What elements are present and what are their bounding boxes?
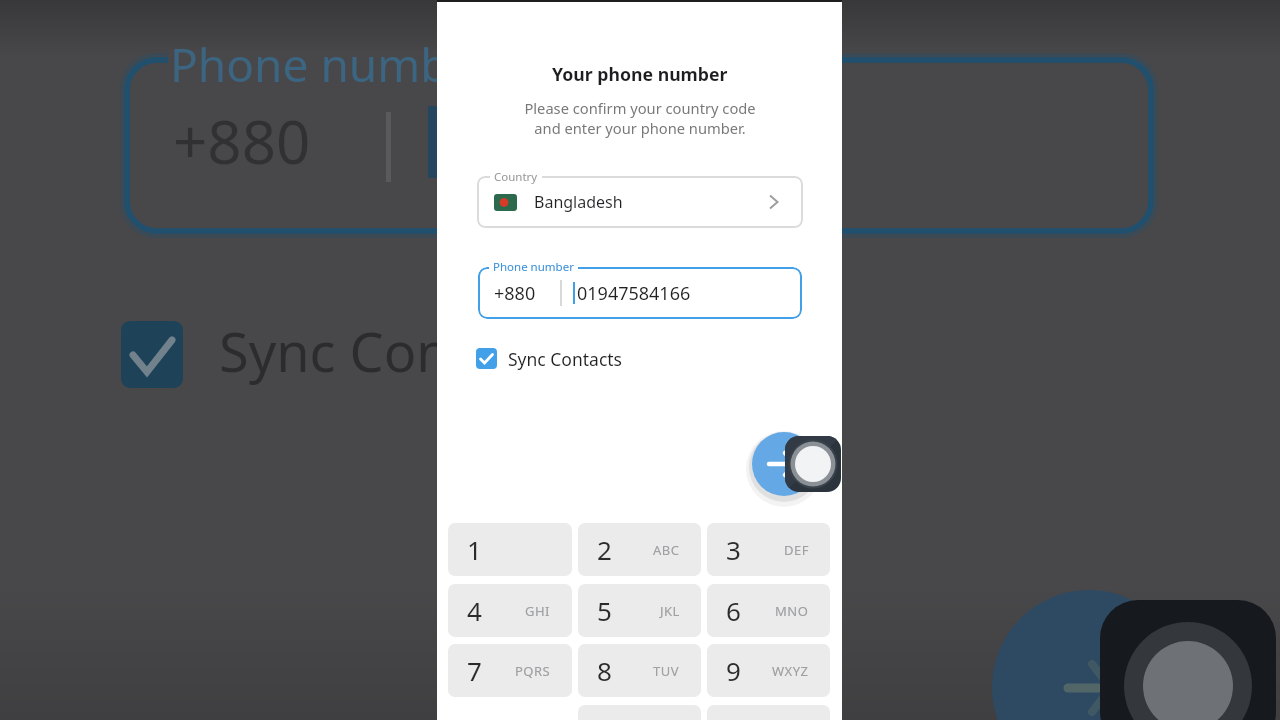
button[interactable]: 5 — [578, 584, 701, 637]
staticText: 8 — [597, 653, 612, 688]
staticText: GHI — [525, 602, 551, 620]
staticText: Please confirm your country code and ent… — [524, 98, 756, 139]
button[interactable]: 1 — [448, 523, 572, 576]
button[interactable] — [752, 432, 816, 496]
staticText: +880 — [494, 281, 536, 306]
staticText: 5 — [597, 593, 612, 628]
staticText: Your phone number — [552, 62, 728, 86]
staticText: 9 — [726, 653, 741, 688]
button[interactable]: +880 — [478, 267, 802, 319]
button[interactable] — [785, 436, 841, 492]
staticText: 1 — [467, 532, 482, 567]
staticText: WXYZ — [772, 662, 809, 680]
staticText: 2 — [597, 532, 612, 567]
button[interactable]: 3 — [707, 523, 830, 576]
staticText: Phone number — [493, 259, 574, 275]
staticText: Country — [494, 169, 538, 185]
staticText: TUV — [653, 662, 680, 680]
staticText: Sync Contacts — [508, 347, 622, 371]
button[interactable]: 8 — [578, 644, 701, 697]
staticText: DEF — [784, 541, 809, 559]
staticText: 7 — [467, 653, 482, 688]
staticText: MNO — [775, 602, 809, 620]
button[interactable]: 9 — [707, 644, 830, 697]
staticText: 01947584166 — [577, 281, 691, 306]
button[interactable]: 6 — [707, 584, 830, 637]
staticText: Bangladesh — [534, 191, 623, 213]
button[interactable]: Bangladesh — [477, 176, 803, 228]
staticText: Sync Con — [219, 314, 450, 388]
staticText: Phone number — [170, 33, 494, 96]
button[interactable]: 2 — [578, 523, 701, 576]
button[interactable]: 4 — [448, 584, 572, 637]
staticText: JKL — [660, 602, 680, 620]
staticText: 4 — [467, 593, 482, 628]
staticText: ABC — [653, 541, 680, 559]
staticText: PQRS — [515, 662, 551, 680]
button[interactable]: 7 — [448, 644, 572, 697]
button[interactable]: Sync Contacts — [476, 346, 656, 372]
staticText: +880 — [173, 100, 311, 182]
staticText: 6 — [726, 593, 741, 628]
staticText: 3 — [726, 532, 741, 567]
